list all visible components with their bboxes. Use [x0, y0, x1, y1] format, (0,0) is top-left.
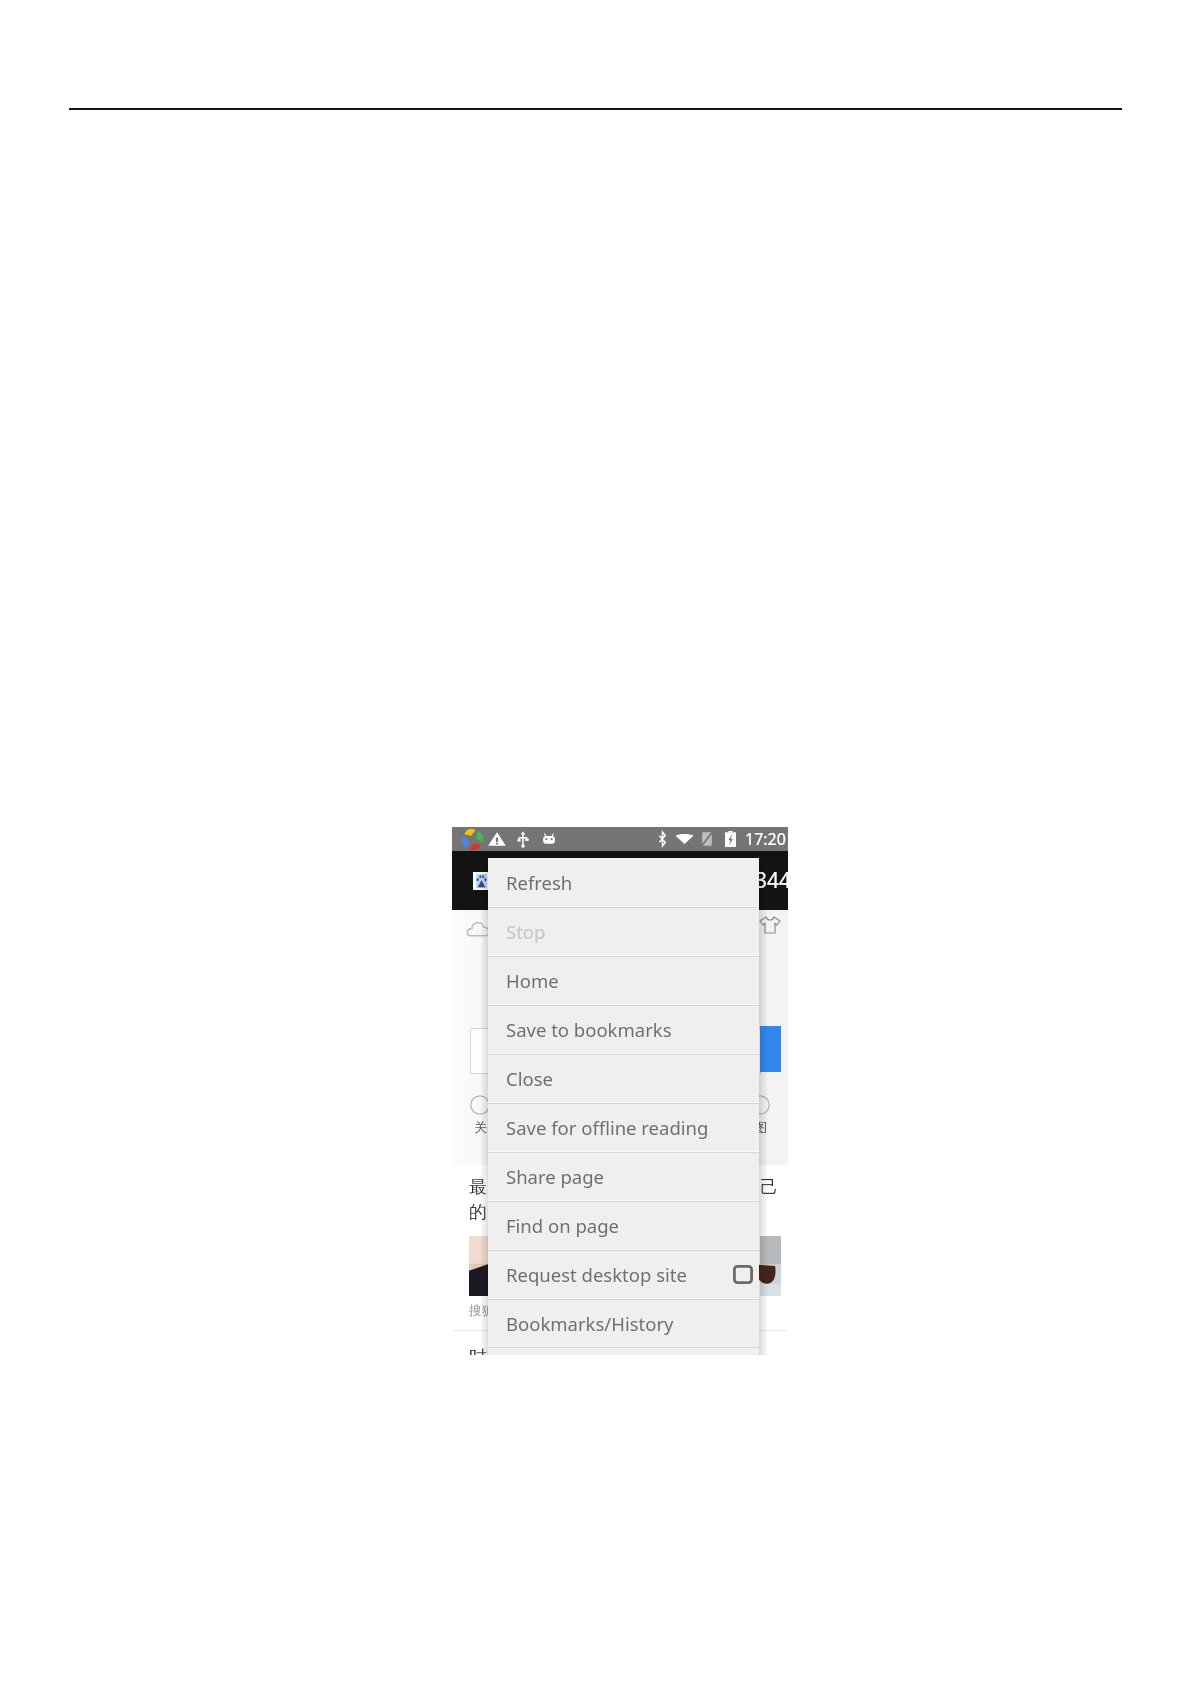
- staticText: Refresh: [506, 870, 573, 895]
- button[interactable]: Save for offline reading: [488, 1104, 759, 1151]
- button[interactable]: Home: [488, 957, 759, 1004]
- staticText: Home: [506, 968, 559, 993]
- staticText: 搜狐: [469, 1302, 495, 1318]
- staticText: 己: [760, 1176, 778, 1199]
- staticText: 小: [684, 1119, 697, 1135]
- staticText: Bookmarks/History: [506, 1311, 674, 1336]
- staticText: 注: [544, 1119, 557, 1135]
- button[interactable]: Refresh: [488, 858, 759, 906]
- button[interactable]: 344: [755, 866, 788, 895]
- staticText: Save for offline reading: [506, 1115, 709, 1140]
- button[interactable]: Weather: [467, 920, 489, 938]
- staticText: 图: [754, 1119, 767, 1135]
- staticText: 最: [469, 1176, 487, 1199]
- staticText: Request desktop site: [506, 1262, 687, 1287]
- button[interactable]: Page info: [473, 872, 490, 890]
- button[interactable]: Save to bookmarks: [488, 1006, 759, 1053]
- button[interactable]: Close: [488, 1055, 759, 1102]
- staticText: 的: [469, 1201, 487, 1224]
- staticText: Find on page: [506, 1213, 619, 1238]
- button[interactable]: Share page: [488, 1153, 759, 1200]
- staticText: 视: [614, 1119, 627, 1135]
- button[interactable]: Bookmarks/History: [488, 1300, 759, 1347]
- staticText: 344: [755, 866, 788, 895]
- button[interactable]: Find on page: [488, 1202, 759, 1249]
- staticText: Stop: [506, 919, 546, 944]
- staticText: 时: [469, 1346, 487, 1355]
- button[interactable]: 图: [750, 1095, 770, 1135]
- button[interactable]: 关: [470, 1095, 490, 1135]
- button[interactable]: Search box: [470, 1028, 761, 1074]
- button[interactable]: Request desktop site: [488, 1251, 759, 1298]
- button[interactable]: 注: [540, 1095, 560, 1135]
- staticText: 17:20: [745, 828, 786, 850]
- button[interactable]: Stop: [488, 908, 759, 955]
- staticText: Share page: [506, 1164, 605, 1189]
- button[interactable]: Shopping: [759, 915, 781, 935]
- staticText: Save to bookmarks: [506, 1017, 672, 1042]
- staticText: Close: [506, 1066, 553, 1091]
- button[interactable]: Search: [760, 1026, 781, 1072]
- button[interactable]: 视: [610, 1095, 630, 1135]
- staticText: 关: [474, 1119, 487, 1135]
- button[interactable]: 小: [680, 1095, 700, 1135]
